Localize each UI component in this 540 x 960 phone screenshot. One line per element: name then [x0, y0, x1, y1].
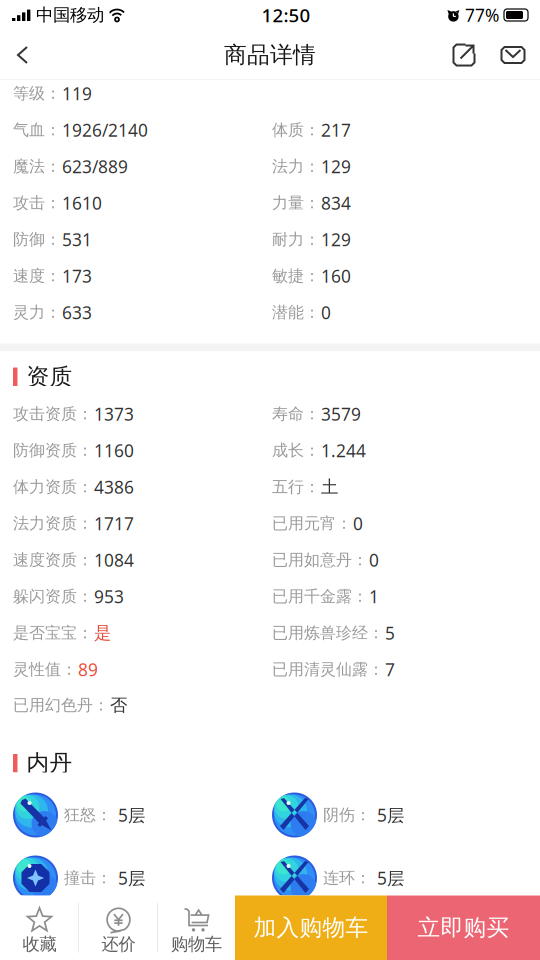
staticText: 法力资质：	[13, 514, 93, 533]
staticText: 953	[94, 585, 124, 608]
staticText: 1160	[94, 439, 134, 462]
staticText: 89	[78, 658, 98, 681]
staticText: 531	[62, 228, 92, 251]
staticText: 成长：	[272, 441, 320, 460]
staticText: 攻击资质：	[13, 404, 93, 424]
staticText: 3579	[321, 402, 361, 425]
staticText: 119	[62, 82, 92, 105]
staticText: 购物车	[171, 933, 222, 955]
staticText: 还价	[101, 933, 135, 955]
staticText: 魔法：	[13, 157, 61, 176]
staticText: 体力资质：	[13, 477, 93, 497]
staticText: 5层	[118, 866, 145, 889]
button[interactable]: 立即购买	[387, 895, 540, 960]
staticText: 力量：	[272, 193, 320, 213]
staticText: 狂怒：	[64, 805, 112, 825]
staticText: 623/889	[62, 155, 128, 178]
staticText: 217	[321, 118, 351, 141]
staticText: 是	[94, 622, 111, 644]
staticText: 129	[321, 155, 351, 178]
staticText: 法力：	[272, 157, 320, 176]
staticText: 1373	[94, 402, 134, 425]
staticText: 12:50	[261, 3, 310, 27]
staticText: 五行：	[272, 477, 320, 497]
staticText: 加入购物车	[253, 914, 368, 942]
staticText: 内丹	[26, 749, 72, 777]
staticText: 1717	[94, 512, 134, 535]
staticText: 1084	[94, 548, 134, 571]
staticText: 已用千金露：	[272, 587, 368, 606]
staticText: 敏捷：	[272, 266, 320, 286]
staticText: 129	[321, 228, 351, 251]
staticText: 160	[321, 264, 351, 287]
staticText: 0	[321, 301, 331, 324]
staticText: 1	[369, 585, 379, 608]
staticText: 5层	[377, 866, 404, 889]
staticText: 气血：	[13, 120, 61, 140]
staticText: 0	[369, 548, 379, 571]
staticText: 灵性值：	[13, 660, 77, 679]
staticText: 已用炼兽珍经：	[272, 623, 384, 643]
staticText: 中国移动	[36, 4, 104, 26]
staticText: 防御：	[13, 230, 61, 249]
staticText: 173	[62, 264, 92, 287]
staticText: 防御资质：	[13, 441, 93, 460]
staticText: 收藏	[22, 933, 56, 955]
staticText: 灵力：	[13, 303, 61, 322]
staticText: 已用幻色丹：	[13, 695, 109, 715]
button[interactable]: Back	[0, 30, 46, 80]
staticText: 体质：	[272, 120, 320, 140]
staticText: 速度资质：	[13, 550, 93, 570]
staticText: 77%	[465, 3, 499, 26]
staticText: 否	[110, 694, 127, 716]
button[interactable]: Messages	[486, 30, 540, 80]
staticText: 1926/2140	[62, 118, 148, 141]
staticText: 商品详情	[224, 41, 316, 69]
staticText: 是否宝宝：	[13, 623, 93, 643]
staticText: 834	[321, 191, 351, 214]
staticText: 已用清灵仙露：	[272, 660, 384, 679]
staticText: 阴伤：	[323, 805, 371, 825]
staticText: 4386	[94, 475, 134, 498]
button[interactable]: 收藏	[0, 895, 79, 960]
staticText: 寿命：	[272, 404, 320, 424]
staticText: 资质	[26, 363, 72, 391]
staticText: 0	[353, 512, 363, 535]
staticText: 已用元宵：	[272, 514, 352, 533]
staticText: 潜能：	[272, 303, 320, 322]
staticText: 立即购买	[417, 914, 509, 942]
staticText: 撞击：	[64, 868, 112, 888]
staticText: 连环：	[323, 868, 371, 888]
staticText: 土	[321, 476, 338, 498]
staticText: 5层	[377, 803, 404, 826]
button[interactable]: 购物车	[158, 895, 235, 960]
button[interactable]: 加入购物车	[235, 895, 387, 960]
staticText: 等级：	[13, 84, 61, 103]
button[interactable]: Share	[442, 30, 486, 80]
staticText: 1610	[62, 191, 102, 214]
staticText: 已用如意丹：	[272, 550, 368, 570]
staticText: 5层	[118, 803, 145, 826]
staticText: 攻击：	[13, 193, 61, 213]
staticText: 耐力：	[272, 230, 320, 249]
button[interactable]: 还价	[79, 895, 158, 960]
staticText: 1.244	[321, 439, 366, 462]
staticText: 速度：	[13, 266, 61, 286]
staticText: 7	[385, 658, 395, 681]
staticText: 633	[62, 301, 92, 324]
staticText: 5	[385, 621, 395, 644]
staticText: 躲闪资质：	[13, 587, 93, 606]
